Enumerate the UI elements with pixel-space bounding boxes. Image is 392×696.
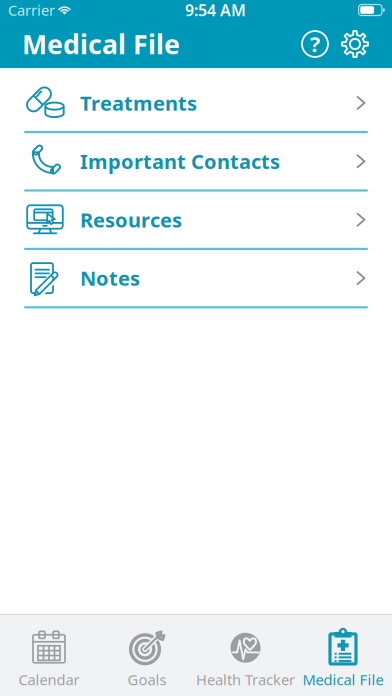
staticText: Resources xyxy=(80,206,182,233)
button[interactable]: Health Tracker xyxy=(196,615,294,696)
staticText: Carrier xyxy=(8,0,55,20)
button[interactable]: Settings xyxy=(340,29,370,59)
staticText: ? xyxy=(310,30,320,58)
staticText: 9:54 AM xyxy=(185,0,246,21)
button[interactable]: Help xyxy=(300,29,330,59)
staticText: Health Tracker xyxy=(196,670,295,689)
staticText: Goals xyxy=(127,670,166,689)
staticText: Important Contacts xyxy=(80,148,280,175)
button[interactable]: Medical File xyxy=(294,615,392,696)
staticText: Treatments xyxy=(80,90,197,116)
button[interactable]: Important Contacts xyxy=(0,133,392,192)
button[interactable]: Calendar xyxy=(0,615,98,696)
staticText: Notes xyxy=(80,265,140,291)
button[interactable]: Notes xyxy=(0,250,392,308)
staticText: Calendar xyxy=(18,670,79,689)
button[interactable]: Treatments xyxy=(0,75,392,133)
button[interactable]: Resources xyxy=(0,192,392,250)
staticText: Medical File xyxy=(302,670,383,689)
staticText: Medical File xyxy=(22,26,180,62)
button[interactable]: Goals xyxy=(98,615,196,696)
